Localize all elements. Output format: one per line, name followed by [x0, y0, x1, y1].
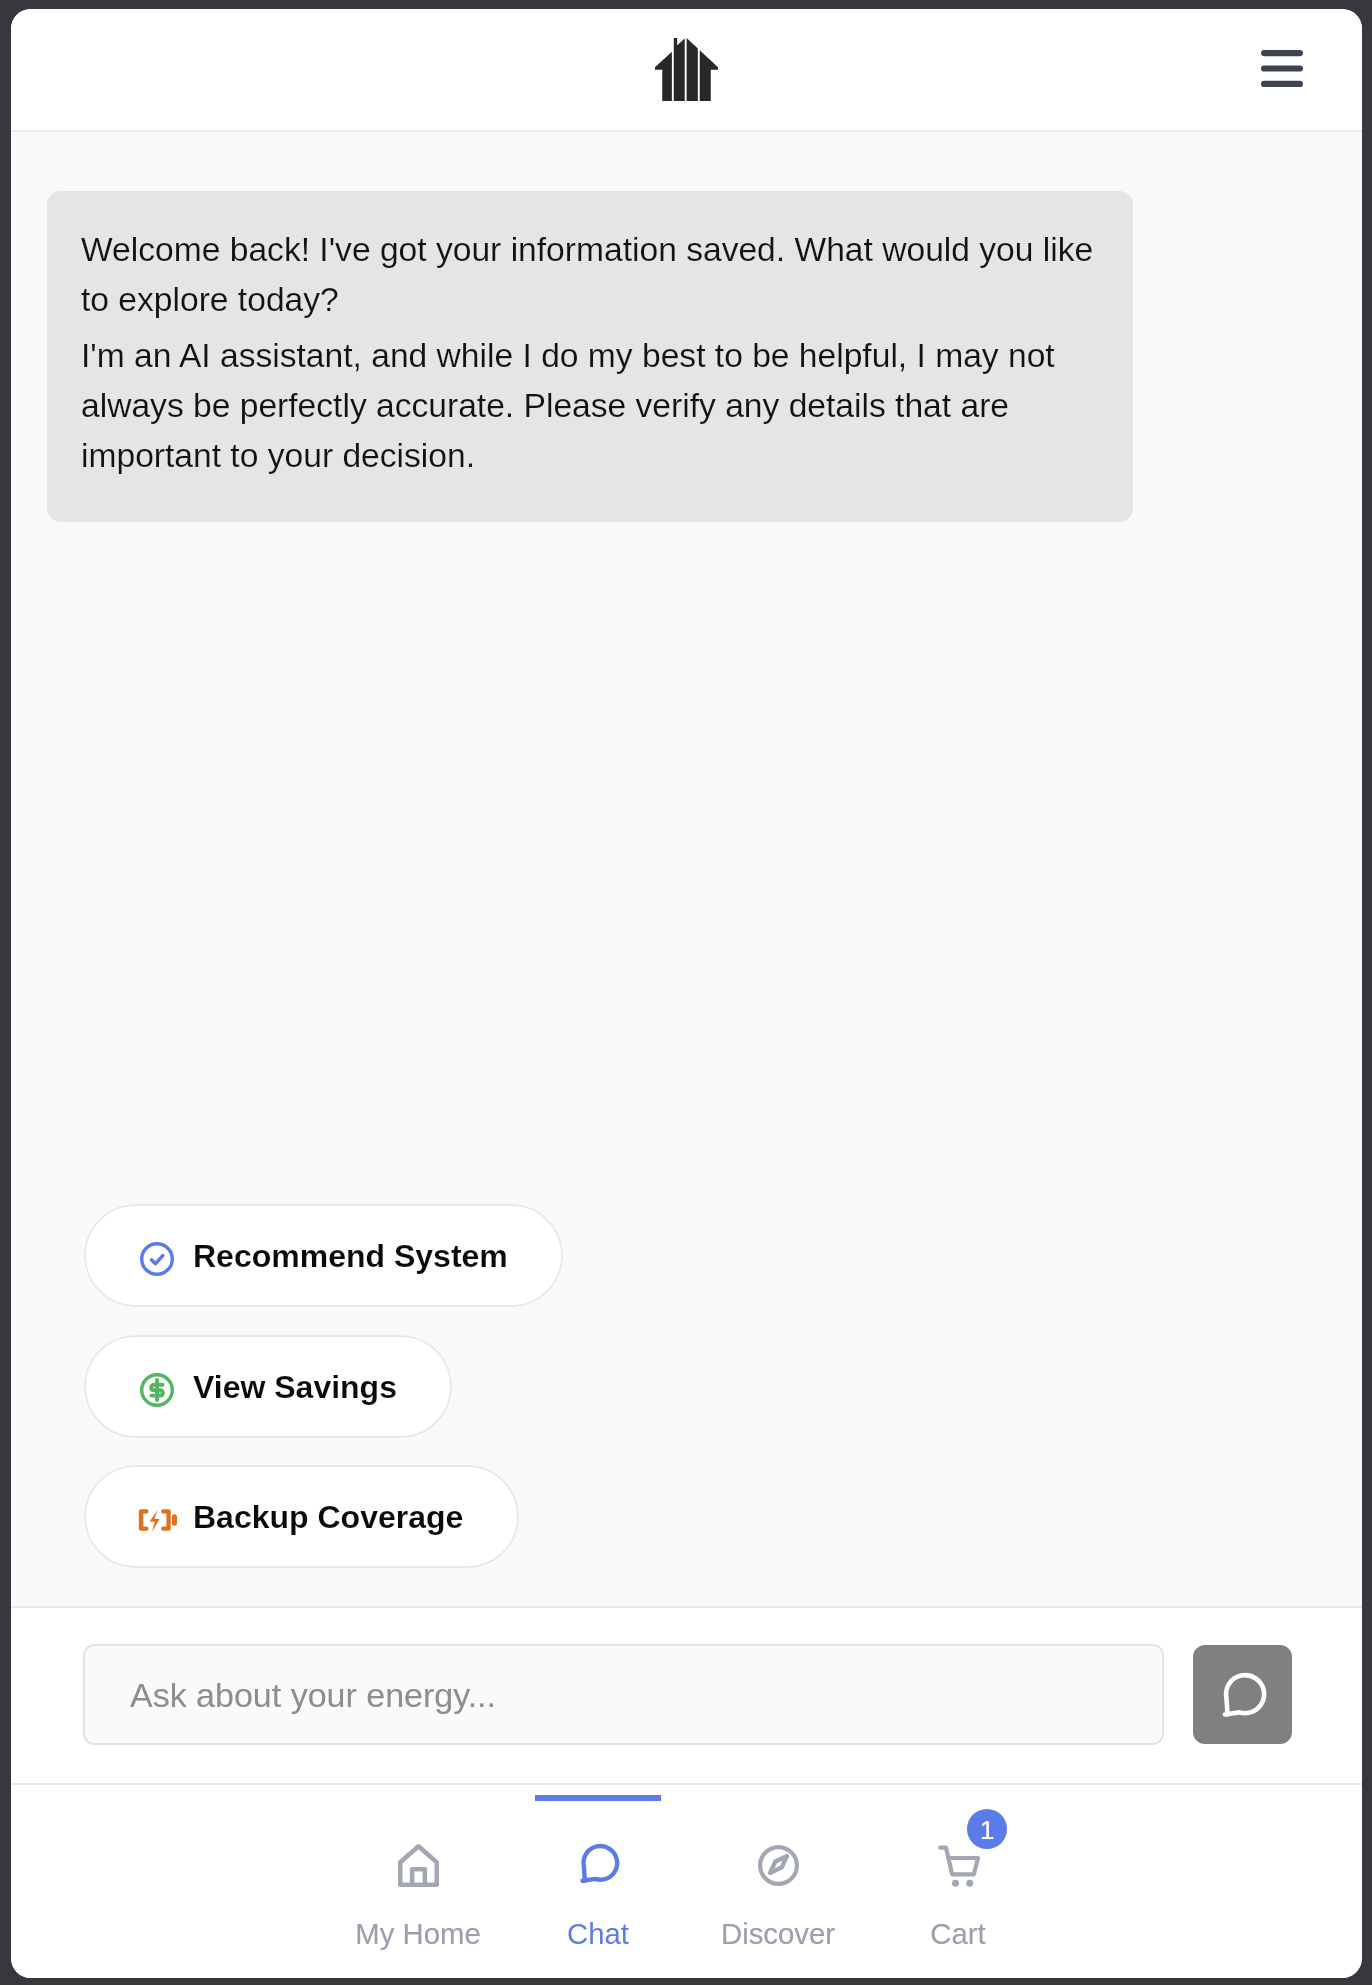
button[interactable]: My Home — [328, 1783, 508, 1950]
button[interactable]: Backup Coverage — [84, 1465, 519, 1568]
button[interactable]: Send message — [1193, 1645, 1292, 1744]
button[interactable]: Recommend System — [84, 1204, 563, 1307]
button[interactable]: Chat — [508, 1783, 688, 1950]
staticText: I'm an AI assistant, and while I do my b… — [81, 337, 1107, 474]
staticText: Chat — [567, 1917, 629, 1950]
button[interactable]: View Savings — [84, 1335, 452, 1438]
staticText: Discover — [721, 1917, 835, 1950]
staticText: Recommend System — [193, 1238, 508, 1274]
staticText: Backup Coverage — [193, 1499, 464, 1535]
staticText: My Home — [355, 1917, 481, 1950]
button[interactable]: Discover — [688, 1783, 868, 1950]
button[interactable]: 1 — [868, 1783, 1048, 1950]
staticText: 1 — [980, 1815, 995, 1844]
staticText: Welcome back! I've got your information … — [81, 231, 1107, 318]
staticText: Ask about your energy... — [130, 1676, 497, 1714]
button[interactable]: Menu — [1247, 33, 1317, 103]
staticText: Cart — [930, 1917, 986, 1950]
staticText: View Savings — [193, 1369, 397, 1405]
button[interactable]: Ask about your energy... — [83, 1644, 1164, 1745]
